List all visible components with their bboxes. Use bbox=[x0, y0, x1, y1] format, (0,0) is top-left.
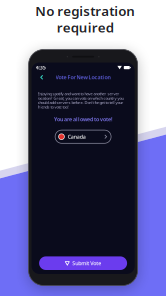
button[interactable]: Submit Vote bbox=[39, 256, 127, 270]
staticText: Enjoying spotify and want to have anothe… bbox=[38, 91, 124, 110]
button[interactable]: Canada bbox=[55, 130, 111, 143]
staticText: 4:35 bbox=[36, 64, 46, 71]
button[interactable]: Back bbox=[37, 73, 46, 82]
staticText: Vote For New Location bbox=[56, 74, 111, 81]
staticText: Submit Vote bbox=[72, 260, 101, 267]
staticText: You are allowed to vote! bbox=[54, 116, 112, 123]
staticText: Canada bbox=[68, 133, 86, 140]
staticText: No registration required bbox=[35, 2, 135, 36]
